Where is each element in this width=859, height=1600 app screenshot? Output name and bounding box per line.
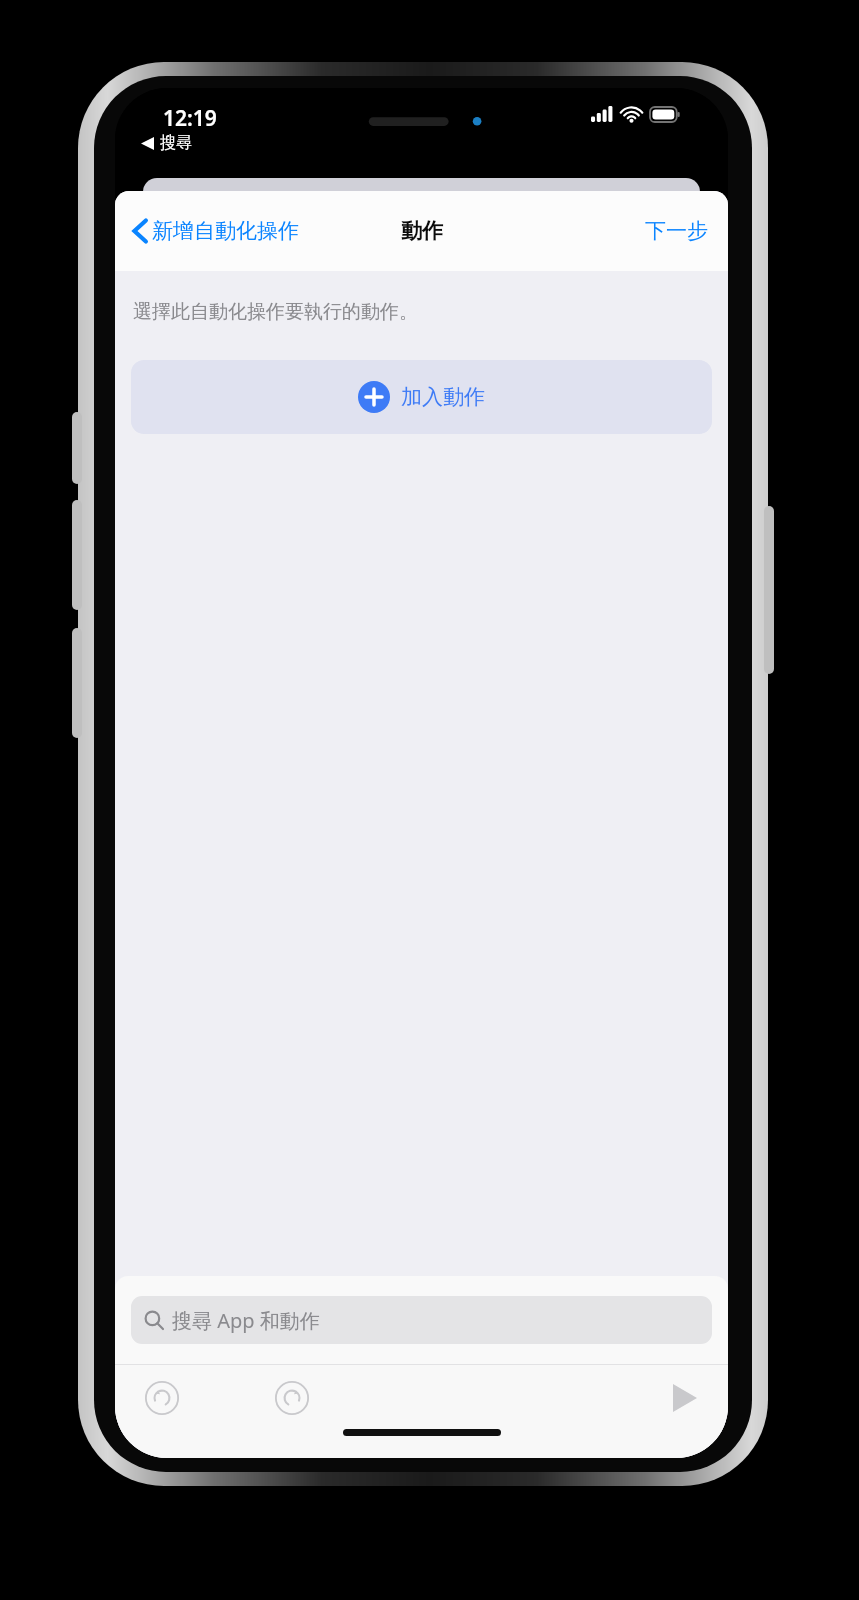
button[interactable]: 加入動作 [131, 360, 712, 434]
button[interactable]: 新增自動化操作 [127, 210, 305, 252]
staticText: 新增自動化操作 [152, 218, 299, 244]
button[interactable]: Play [658, 1371, 712, 1425]
staticText: 選擇此自動化操作要執行的動作。 [133, 300, 418, 324]
button[interactable]: 下一步 [639, 210, 714, 252]
button[interactable]: Undo [135, 1371, 189, 1425]
staticText: 搜尋 App 和動作 [172, 1307, 320, 1334]
staticText: 搜尋 [160, 133, 192, 153]
staticText: 下一步 [645, 218, 708, 244]
staticText: 加入動作 [401, 384, 485, 410]
staticText: 12:19 [163, 104, 217, 133]
staticText: 動作 [401, 218, 443, 244]
button[interactable]: 搜尋 App 和動作 [131, 1296, 712, 1344]
button[interactable]: Redo [265, 1371, 319, 1425]
